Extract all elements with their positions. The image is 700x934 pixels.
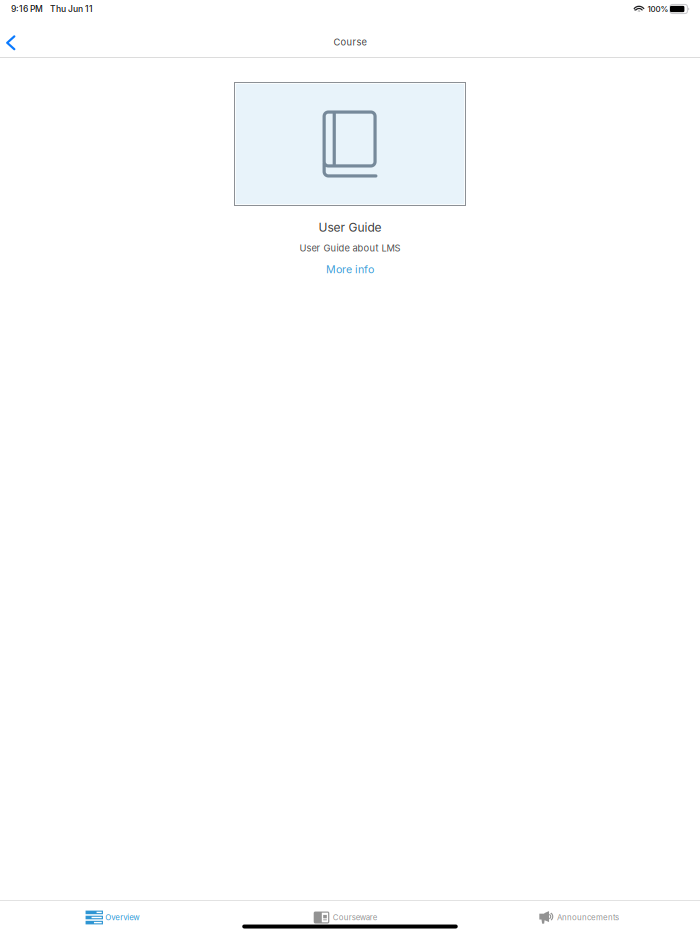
button[interactable]: More info: [320, 261, 380, 278]
staticText: 100%: [647, 4, 668, 14]
staticText: Thu Jun 11: [50, 4, 93, 14]
staticText: User Guide about LMS: [299, 242, 400, 254]
button[interactable]: Announcements: [531, 907, 635, 928]
staticText: More info: [326, 263, 374, 276]
staticText: Course: [333, 36, 366, 48]
staticText: 9:16 PM: [11, 4, 43, 14]
button[interactable]: Back: [0, 19, 28, 55]
staticText: Announcements: [557, 913, 619, 922]
staticText: Overview: [105, 913, 139, 922]
staticText: Courseware: [333, 913, 378, 922]
staticText: User Guide: [318, 220, 381, 234]
button[interactable]: Overview: [78, 906, 156, 929]
button[interactable]: Courseware: [306, 907, 394, 927]
